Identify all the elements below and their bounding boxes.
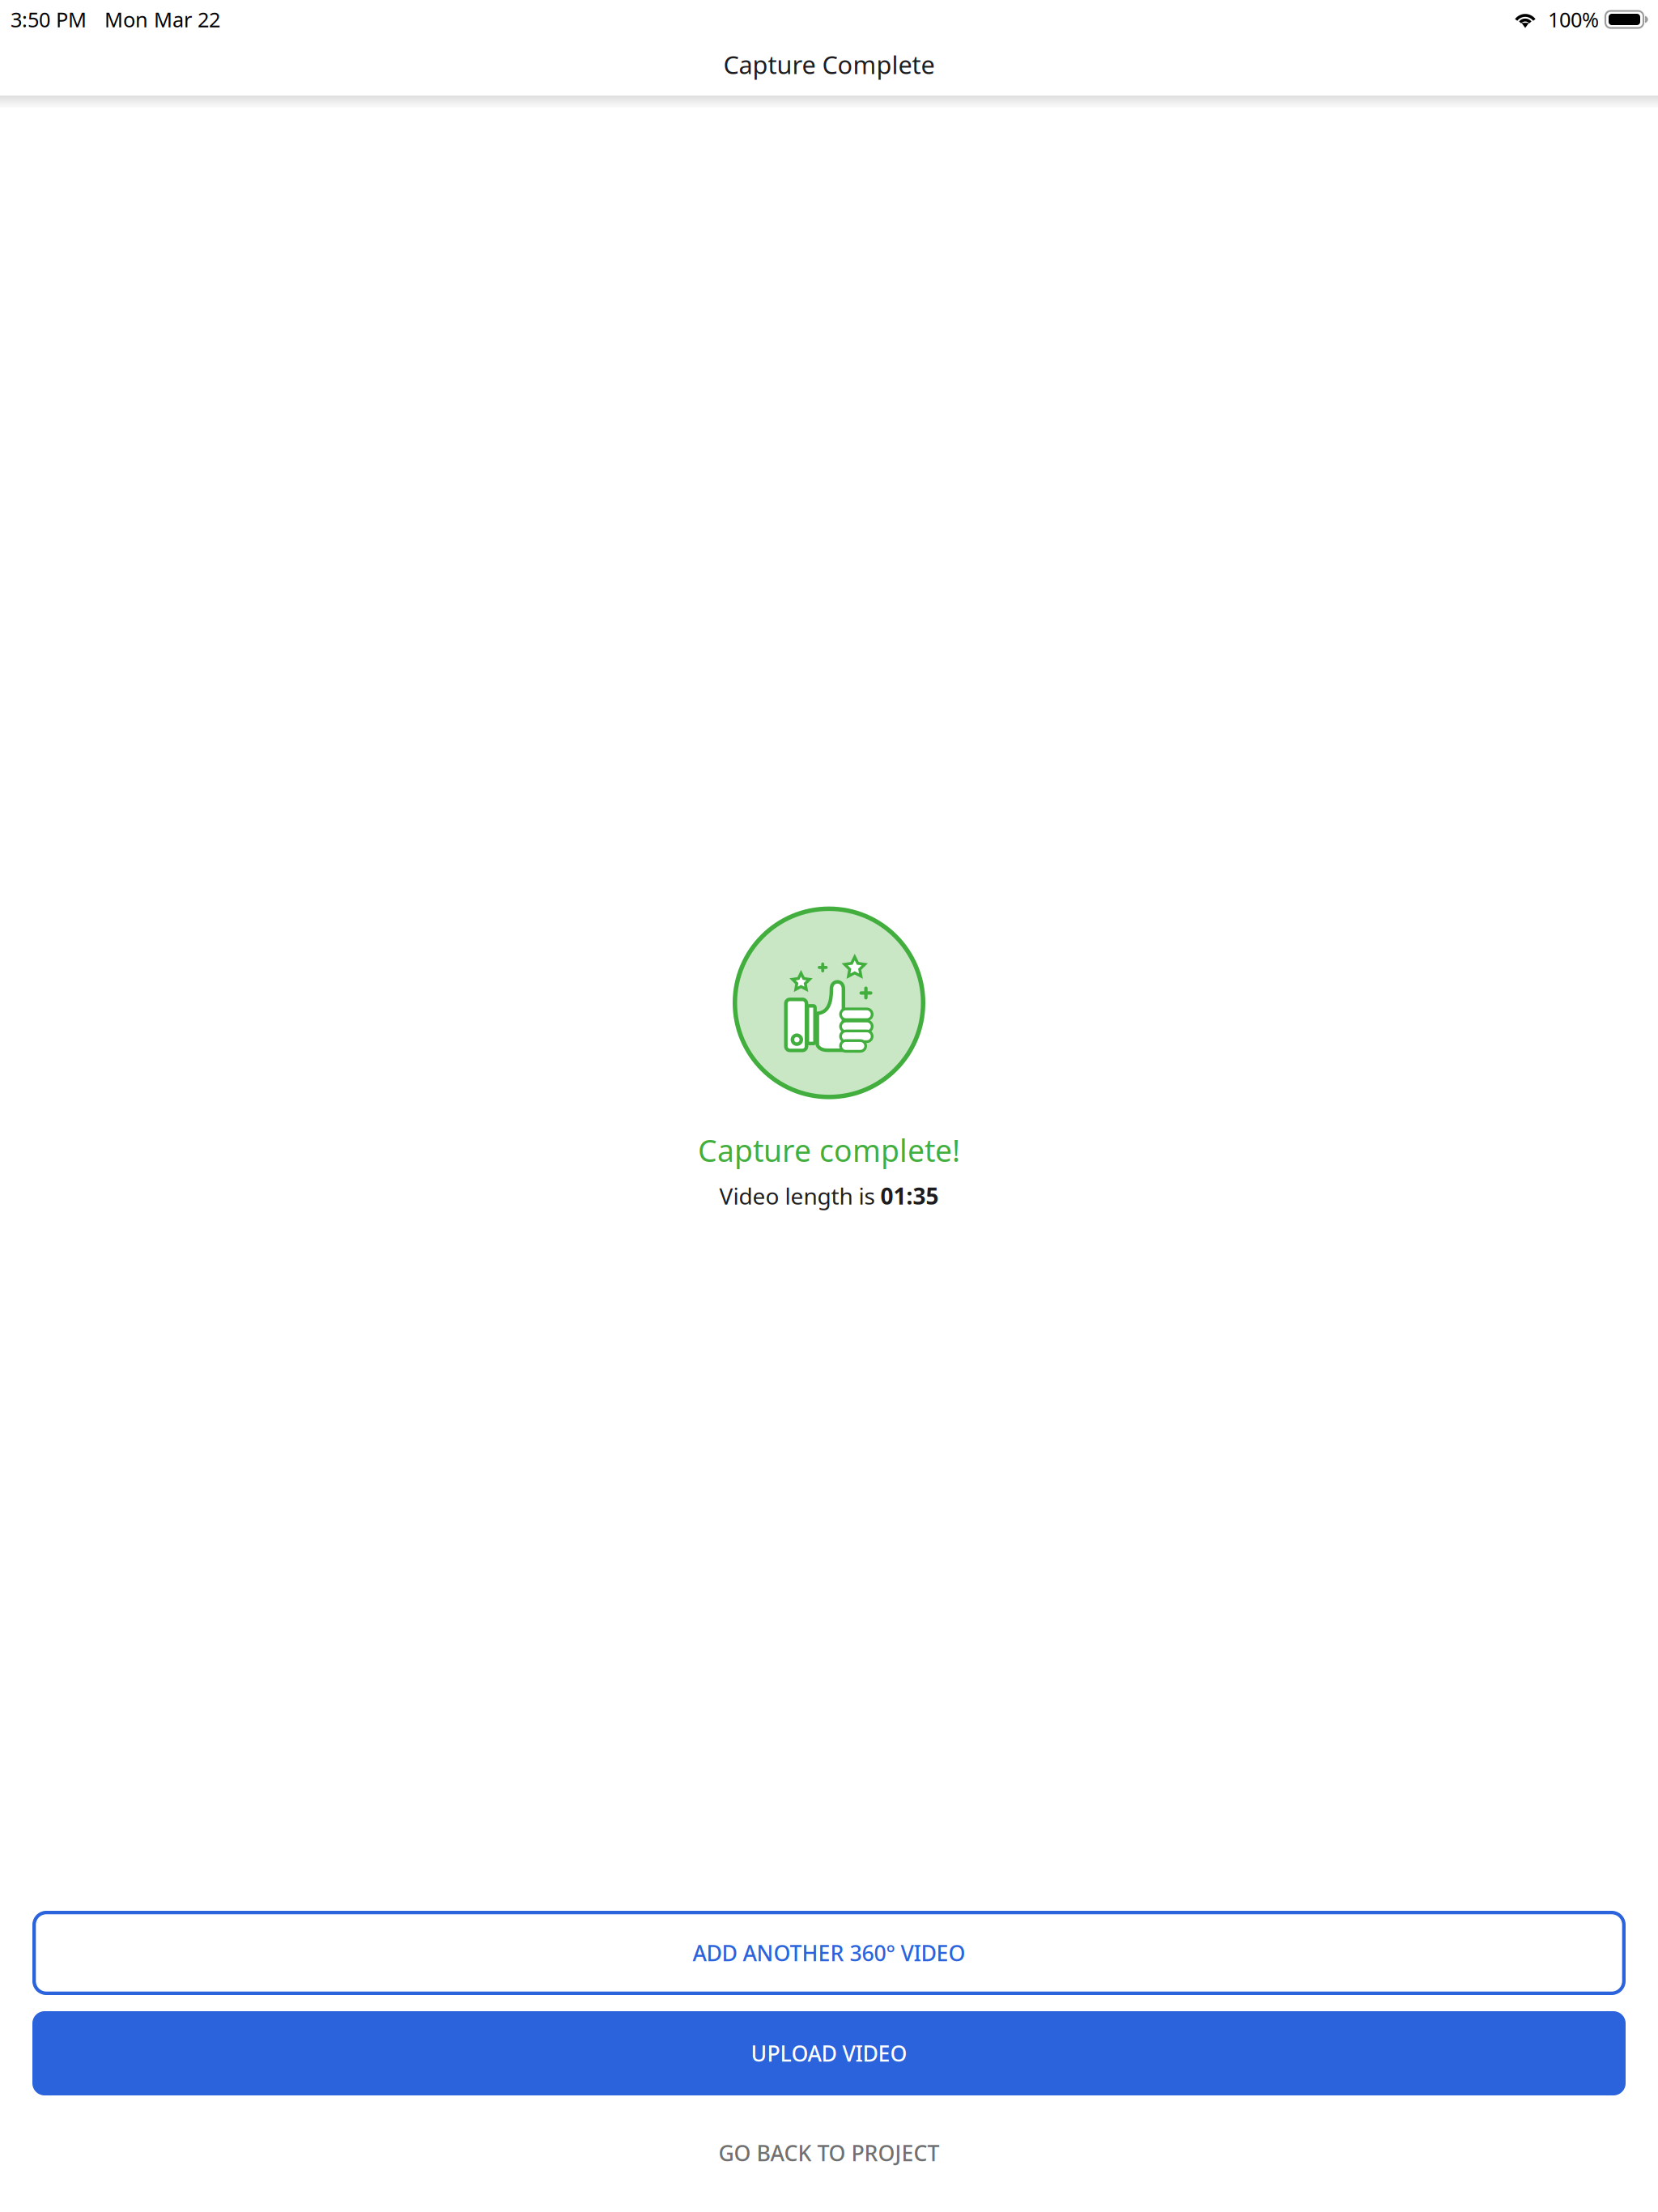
staticText: Mon Mar 22 <box>104 6 220 33</box>
button[interactable]: ADD ANOTHER 360° VIDEO <box>32 1911 1626 1995</box>
staticText: Capture Complete <box>723 48 935 81</box>
staticText: ADD ANOTHER 360° VIDEO <box>693 1939 965 1967</box>
staticText: GO BACK TO PROJECT <box>718 2139 940 2167</box>
staticText: 3:50 PM <box>11 6 87 33</box>
staticText: UPLOAD VIDEO <box>751 2039 907 2068</box>
staticText: Video length is 01:35 <box>719 1181 939 1211</box>
staticText: Capture complete! <box>698 1130 960 1170</box>
staticText: 100% <box>1548 6 1599 33</box>
button[interactable]: GO BACK TO PROJECT <box>32 2095 1626 2210</box>
button[interactable]: UPLOAD VIDEO <box>32 2011 1626 2095</box>
